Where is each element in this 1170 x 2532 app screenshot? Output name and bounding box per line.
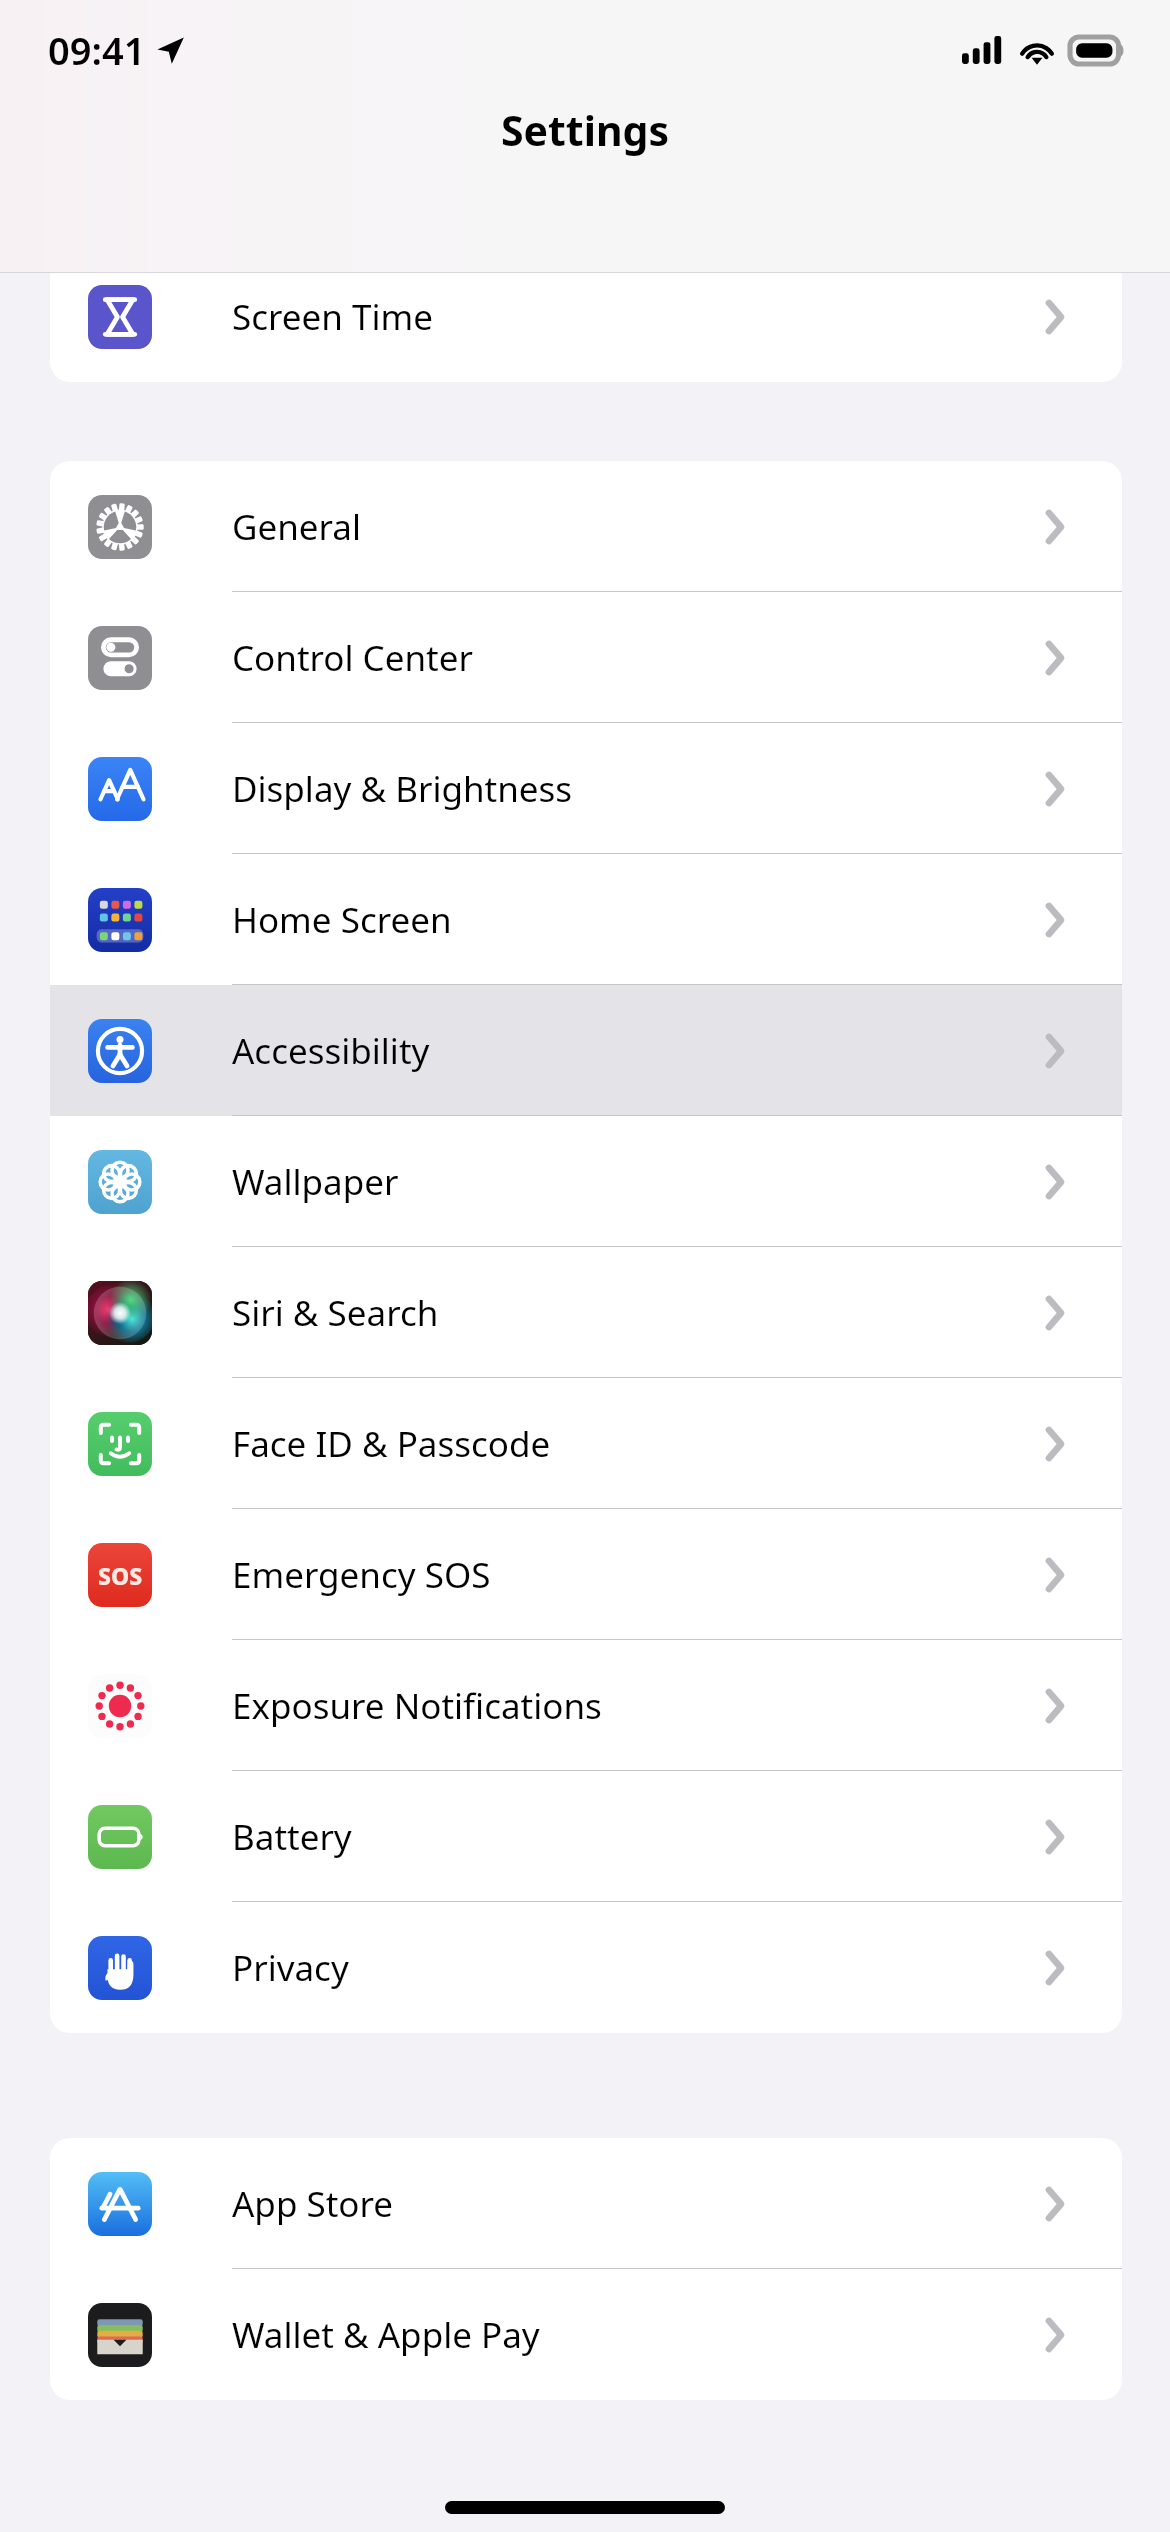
staticText: Face ID & Passcode [232,1420,551,1468]
staticText: SOS [98,1560,143,1591]
staticText: Wallet & Apple Pay [232,2311,540,2359]
staticText: Settings [0,102,1170,158]
button[interactable]: App Store [50,2138,1122,2269]
button[interactable]: Accessibility [50,985,1122,1116]
button[interactable]: Siri & Search [50,1247,1122,1378]
staticText: Wallpaper [232,1158,399,1206]
button[interactable]: Exposure Notifications [50,1640,1122,1771]
staticText: Control Center [232,634,473,682]
button[interactable]: Face ID & Passcode [50,1378,1122,1509]
staticText: Siri & Search [232,1289,439,1337]
button[interactable]: SOS [50,1509,1122,1640]
button[interactable]: Home Screen [50,854,1122,985]
button[interactable]: Control Center [50,592,1122,723]
staticText: Display & Brightness [232,765,573,813]
staticText: Privacy [232,1944,349,1992]
button[interactable]: Screen Time [50,251,1122,382]
button[interactable]: Wallet & Apple Pay [50,2269,1122,2400]
staticText: App Store [232,2180,394,2228]
staticText: Battery [232,1813,352,1861]
staticText: Screen Time [232,293,433,341]
button[interactable]: Wallpaper [50,1116,1122,1247]
button[interactable]: Focus [50,120,1122,251]
staticText: Home Screen [232,896,452,944]
button[interactable]: General [50,461,1122,592]
staticText: Exposure Notifications [232,1682,602,1730]
staticText: General [232,503,362,551]
staticText: Accessibility [232,1027,430,1075]
staticText: 09:41 [48,24,146,76]
button[interactable]: Privacy [50,1902,1122,2033]
button[interactable]: Display & Brightness [50,723,1122,854]
staticText: Emergency SOS [232,1551,491,1599]
button[interactable]: Battery [50,1771,1122,1902]
